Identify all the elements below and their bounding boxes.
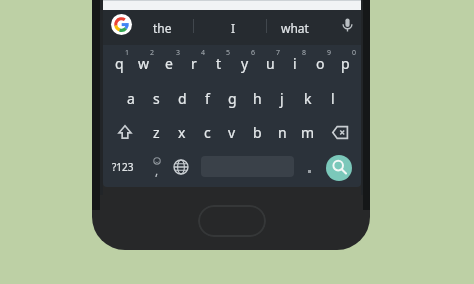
button[interactable]: j <box>268 81 296 115</box>
staticText: i <box>293 54 297 73</box>
button[interactable]: p <box>331 46 359 80</box>
button[interactable]: q <box>105 46 133 80</box>
staticText: 1 <box>125 48 130 58</box>
staticText: p <box>341 54 350 73</box>
button[interactable]: x <box>168 115 196 149</box>
staticText: 6 <box>251 48 256 58</box>
button[interactable] <box>118 124 132 139</box>
staticText: n <box>278 123 287 142</box>
button[interactable]: a <box>117 81 145 115</box>
button[interactable]: l <box>319 81 347 115</box>
staticText: 0 <box>352 48 357 58</box>
button[interactable]: k <box>294 81 322 115</box>
button[interactable]: I <box>203 10 263 45</box>
button[interactable]: i <box>281 46 309 80</box>
staticText: 9 <box>327 48 332 58</box>
staticText: t <box>216 54 222 73</box>
staticText: g <box>228 89 237 108</box>
staticText: h <box>253 89 262 108</box>
button[interactable]: m <box>294 115 322 149</box>
staticText: ?123 <box>112 160 134 174</box>
button[interactable]: o <box>306 46 334 80</box>
staticText: 3 <box>176 48 181 58</box>
staticText: , <box>155 162 159 178</box>
button[interactable]: w <box>130 46 158 80</box>
staticText: 8 <box>302 48 307 58</box>
button[interactable]: b <box>243 115 271 149</box>
staticText: b <box>253 123 262 142</box>
button[interactable] <box>339 17 356 38</box>
staticText: a <box>127 89 135 108</box>
button[interactable]: r <box>180 46 208 80</box>
staticText: d <box>178 89 187 108</box>
staticText: w <box>138 54 150 73</box>
staticText: f <box>205 89 210 108</box>
button[interactable] <box>302 164 316 178</box>
button[interactable]: y <box>231 46 259 80</box>
button[interactable] <box>172 158 190 176</box>
button[interactable]: n <box>268 115 296 149</box>
staticText: 2 <box>150 48 155 58</box>
button[interactable]: t <box>205 46 233 80</box>
staticText: j <box>280 89 284 108</box>
staticText: z <box>153 123 160 142</box>
staticText: l <box>331 89 335 108</box>
button[interactable]: , <box>143 153 171 187</box>
staticText: e <box>165 54 173 73</box>
button[interactable]: d <box>168 81 196 115</box>
staticText: what <box>281 20 309 36</box>
button[interactable]: the <box>132 10 192 45</box>
button[interactable]: c <box>193 115 221 149</box>
staticText: I <box>231 20 236 36</box>
staticText: v <box>228 123 236 142</box>
staticText: 7 <box>276 48 281 58</box>
staticText: u <box>266 54 275 73</box>
button[interactable]: h <box>243 81 271 115</box>
button[interactable]: g <box>218 81 246 115</box>
button[interactable]: s <box>142 81 170 115</box>
staticText: s <box>153 89 160 108</box>
button[interactable] <box>198 205 266 237</box>
staticText: o <box>316 54 325 73</box>
staticText: 4 <box>201 48 206 58</box>
staticText: the <box>153 20 172 36</box>
button[interactable] <box>326 155 352 181</box>
button[interactable]: v <box>218 115 246 149</box>
staticText: y <box>241 54 249 73</box>
staticText: k <box>304 89 312 108</box>
staticText: m <box>301 123 315 142</box>
button[interactable]: e <box>155 46 183 80</box>
staticText: 5 <box>226 48 231 58</box>
staticText: r <box>191 54 197 73</box>
staticText: q <box>115 54 124 73</box>
button[interactable] <box>111 14 132 35</box>
button[interactable]: ?123 <box>109 150 137 184</box>
button[interactable]: u <box>256 46 284 80</box>
staticText: c <box>204 123 211 142</box>
staticText: x <box>178 123 186 142</box>
button[interactable]: z <box>142 115 170 149</box>
button[interactable] <box>332 126 351 139</box>
button[interactable]: what <box>265 10 325 45</box>
button[interactable]: f <box>193 81 221 115</box>
